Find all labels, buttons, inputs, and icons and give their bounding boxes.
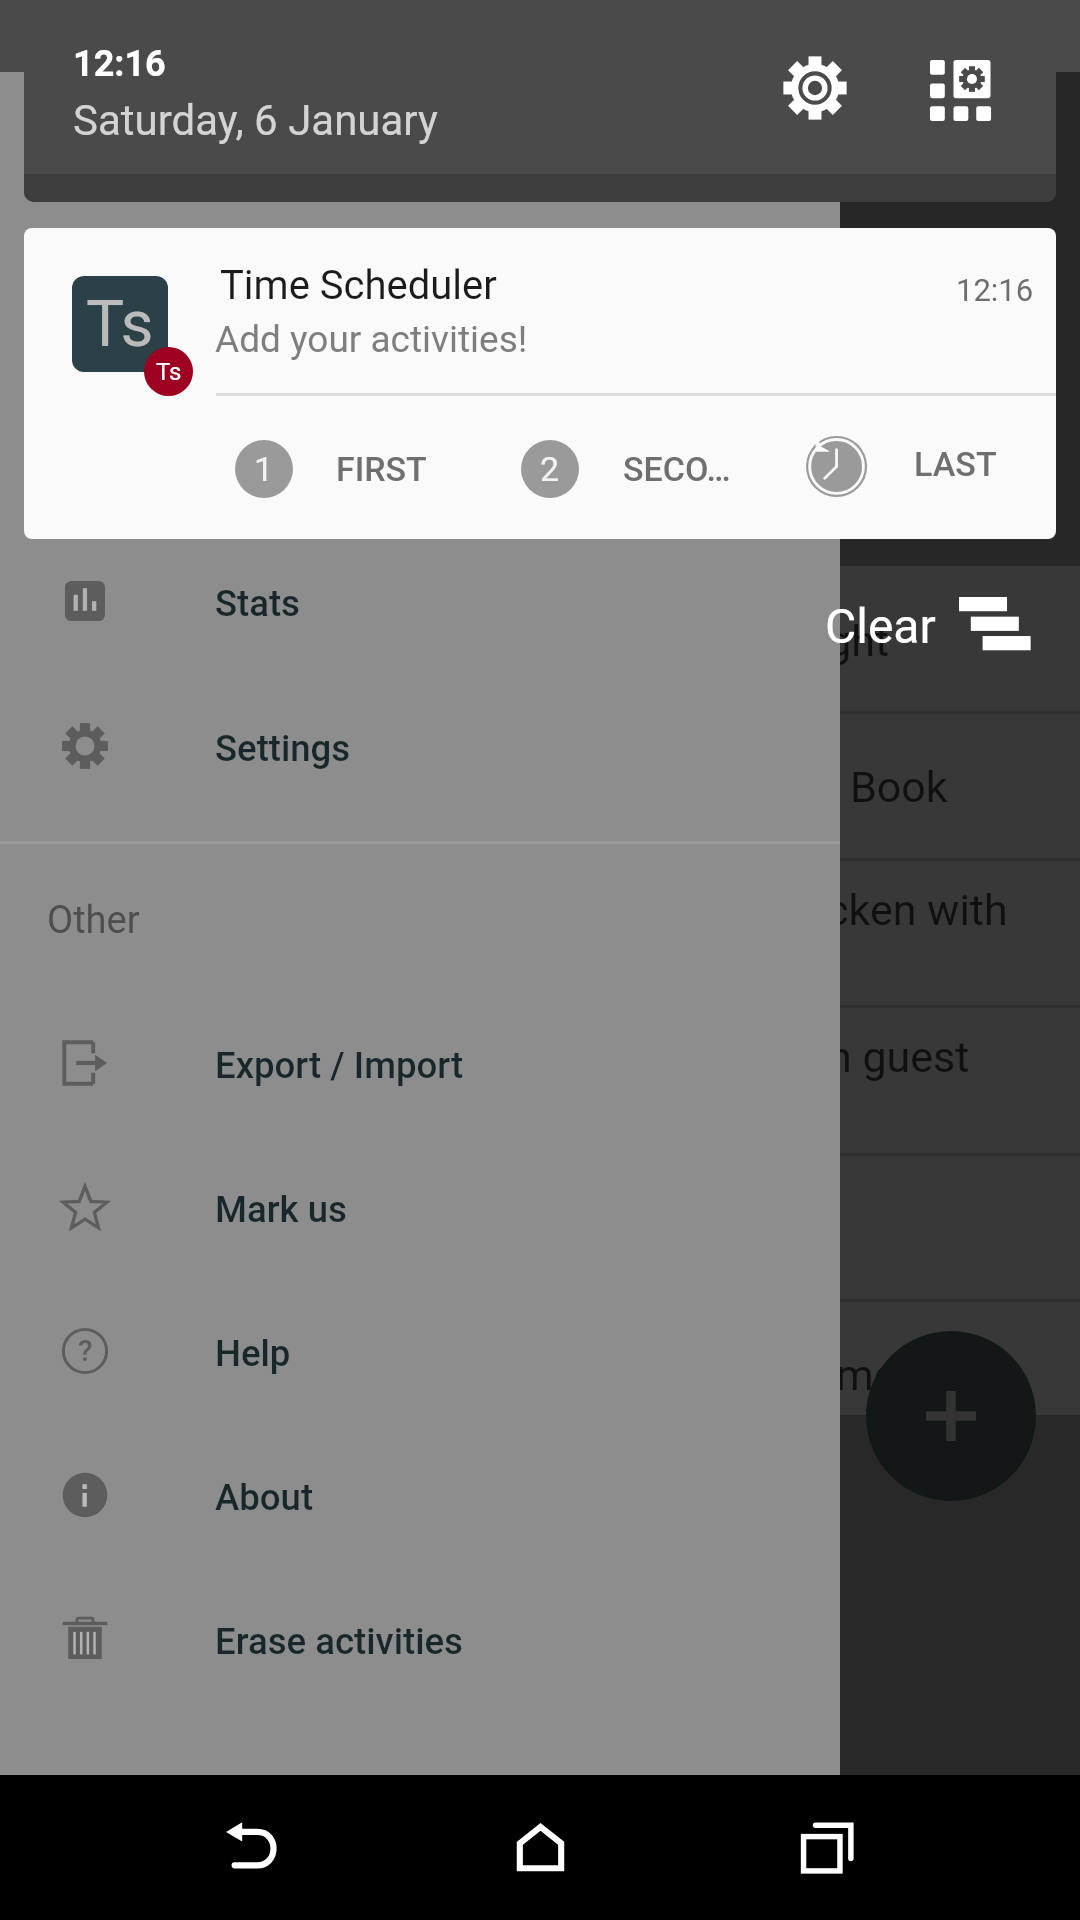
button[interactable]: Switch user (899, 29, 1021, 151)
staticText: LAST (914, 444, 997, 484)
button[interactable]: Recent apps (768, 1787, 888, 1907)
staticText: About (215, 1476, 314, 1519)
staticText: Night (786, 616, 890, 666)
staticText: Saturday, 6 January (73, 96, 438, 145)
button[interactable]: ? (0, 1279, 840, 1423)
staticText: cken with (826, 885, 1008, 935)
button[interactable]: Settings (0, 674, 840, 818)
staticText: ? (78, 1333, 93, 1368)
staticText: Mark us (215, 1188, 347, 1231)
button[interactable]: Clear (812, 566, 1056, 711)
staticText: Export / Import (215, 1044, 464, 1087)
staticText: Ts (156, 358, 182, 386)
staticText: Clear (825, 598, 936, 654)
staticText: 1 (254, 449, 274, 489)
staticText: n guest (828, 1032, 970, 1082)
staticText: Time Scheduler (220, 262, 497, 309)
staticText: SECO… (623, 449, 731, 489)
button[interactable]: Export / Import (0, 991, 840, 1135)
button[interactable]: 2 (521, 410, 731, 528)
staticText: Settings (215, 727, 351, 770)
staticText: Ts (86, 287, 154, 362)
button[interactable]: Back (193, 1787, 313, 1907)
button[interactable]: Add activity (866, 1331, 1036, 1501)
staticText: me (836, 1350, 897, 1400)
button[interactable]: Erase activities (0, 1567, 840, 1711)
staticText: Other (47, 898, 140, 943)
button[interactable]: Mark us (0, 1135, 840, 1279)
button[interactable]: About (0, 1423, 840, 1567)
staticText: Help (215, 1332, 291, 1375)
staticText: Book (850, 762, 948, 812)
button[interactable]: Ts (24, 228, 1056, 539)
button[interactable]: Home (480, 1787, 600, 1907)
staticText: 2 (540, 449, 560, 489)
button[interactable]: 1 (235, 410, 427, 528)
button[interactable]: Settings (761, 34, 868, 141)
button[interactable]: Stats (0, 529, 840, 673)
staticText: Add your activities! (215, 318, 528, 361)
staticText: Stats (215, 582, 300, 625)
button[interactable]: LAST (806, 405, 997, 523)
staticText: 12:16 (73, 43, 166, 85)
staticText: FIRST (336, 449, 427, 489)
staticText: Erase activities (215, 1620, 463, 1663)
staticText: 12:16 (956, 272, 1034, 308)
